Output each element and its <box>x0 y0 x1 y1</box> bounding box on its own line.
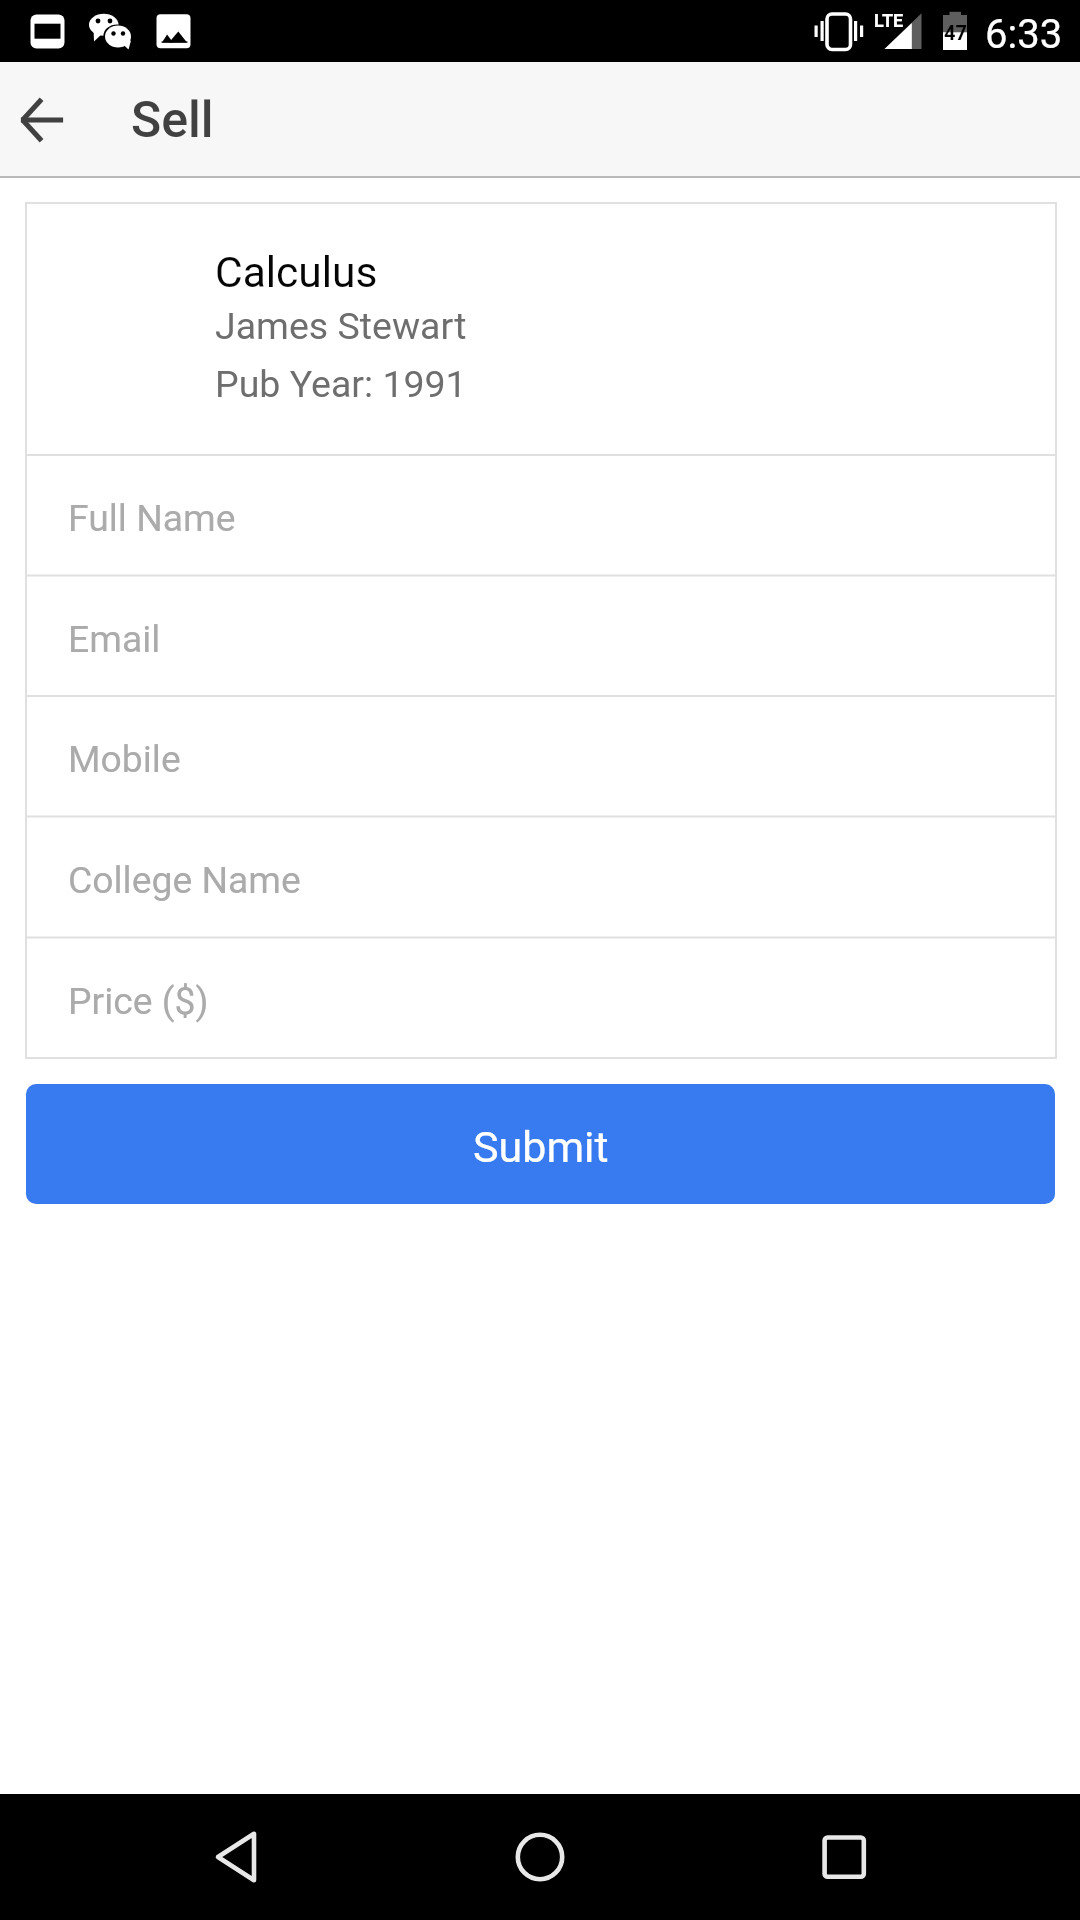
staticText: 47 <box>944 21 967 44</box>
staticText: Mobile <box>68 737 181 781</box>
button[interactable]: Full Name <box>27 456 1055 575</box>
staticText: College Name <box>68 858 301 902</box>
staticText: Sell <box>131 91 214 150</box>
button[interactable]: Back <box>7 85 77 155</box>
button[interactable]: Back <box>160 1794 310 1920</box>
staticText: 6:33 <box>985 11 1063 58</box>
staticText: Submit <box>473 1122 609 1172</box>
button[interactable]: Mobile <box>27 697 1055 816</box>
staticText: Calculus <box>215 248 378 298</box>
button[interactable]: Home <box>465 1794 615 1920</box>
button[interactable]: Submit <box>26 1084 1055 1204</box>
button[interactable]: College Name <box>27 818 1055 937</box>
staticText: Full Name <box>68 496 236 540</box>
staticText: James Stewart <box>215 304 467 348</box>
staticText: Pub Year: 1991 <box>215 362 467 406</box>
button[interactable]: Recent apps <box>770 1794 920 1920</box>
staticText: Price ($) <box>68 979 209 1023</box>
staticText: Email <box>68 617 161 661</box>
button[interactable]: Email <box>27 577 1055 696</box>
button[interactable]: Price ($) <box>27 939 1055 1058</box>
staticText: LTE <box>874 10 904 31</box>
